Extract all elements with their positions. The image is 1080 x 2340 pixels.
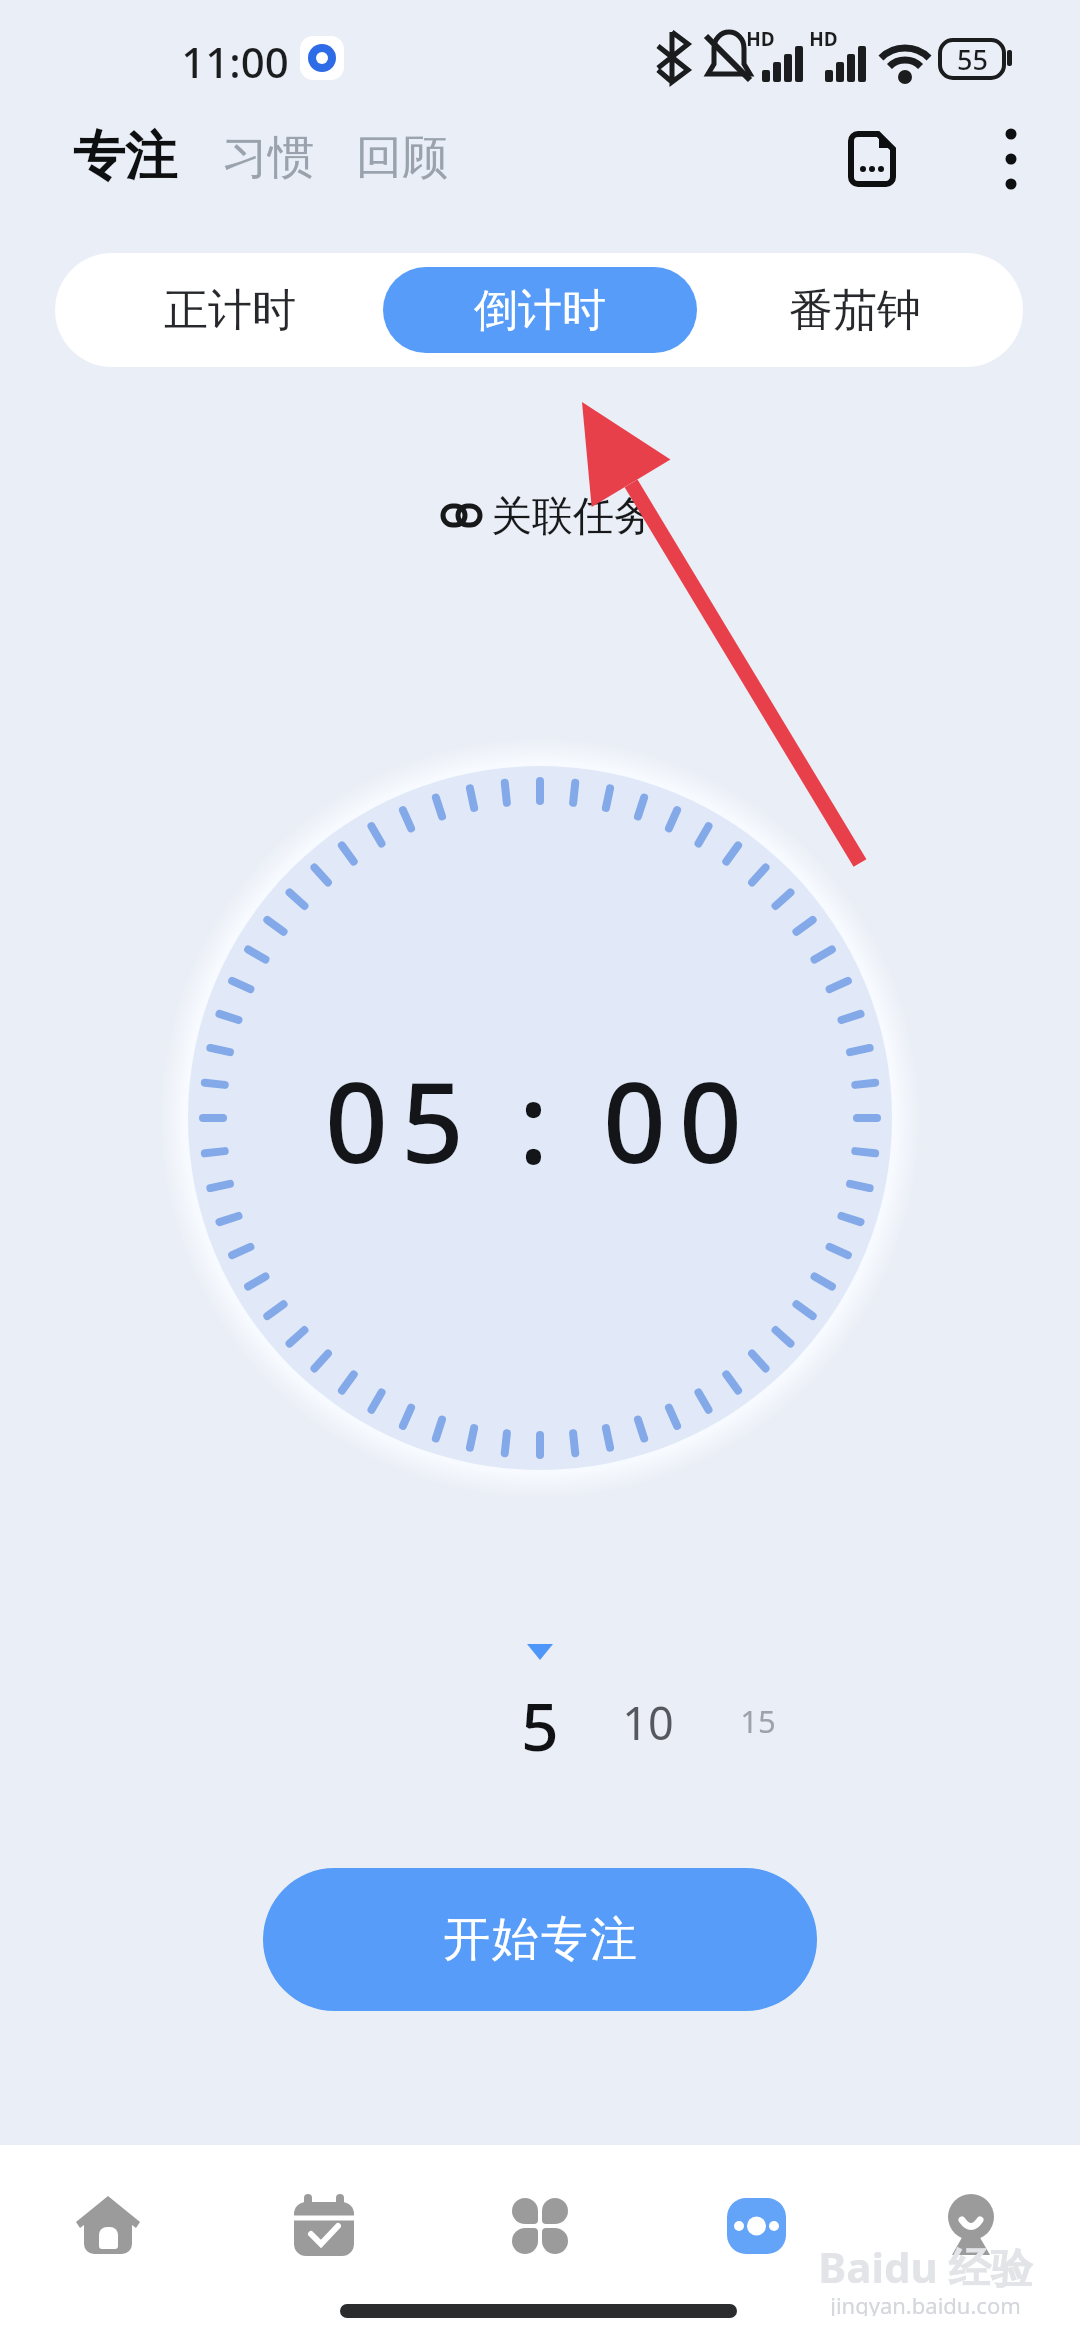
staticText: HD <box>809 26 838 50</box>
staticText: 5 <box>521 1680 559 1760</box>
staticText: 正计时 <box>164 283 296 338</box>
button[interactable]: 正计时 <box>110 278 350 342</box>
button[interactable]: 回顾 <box>352 128 452 188</box>
button[interactable] <box>727 2198 786 2254</box>
button[interactable] <box>848 131 896 187</box>
staticText: 05 : 00 <box>325 1045 755 1195</box>
staticText: 11:00 <box>181 33 289 85</box>
staticText: 习惯 <box>222 129 314 187</box>
staticText: 回顾 <box>356 129 448 187</box>
button[interactable]: 倒计时 <box>420 278 660 342</box>
button[interactable]: 习惯 <box>218 128 318 188</box>
button[interactable]: 关联任务 <box>435 486 645 548</box>
staticText: 10 <box>622 1692 674 1753</box>
staticText: 关联任务 <box>491 491 655 543</box>
staticText: 专注 <box>73 124 177 190</box>
staticText: 番茄钟 <box>789 283 921 338</box>
staticText: HD <box>746 26 775 50</box>
button[interactable] <box>945 2192 997 2256</box>
staticText: 开始专注 <box>442 1910 638 1969</box>
button[interactable] <box>76 2196 140 2258</box>
button[interactable]: 专注 <box>70 122 180 192</box>
staticText: 15 <box>740 1700 776 1742</box>
staticText: jingyan.baidu.com <box>830 2290 1021 2316</box>
button[interactable]: 5 <box>500 1680 580 1760</box>
button[interactable]: 10 <box>608 1690 688 1754</box>
button[interactable] <box>512 2198 568 2254</box>
staticText: 倒计时 <box>474 283 606 338</box>
button[interactable] <box>294 2194 354 2256</box>
staticText: 55 <box>957 41 988 78</box>
button[interactable]: 15 <box>722 1695 794 1747</box>
button[interactable]: 开始专注 <box>263 1868 817 2011</box>
staticText: Baidu 经验 <box>818 2238 1033 2294</box>
button[interactable] <box>996 126 1026 192</box>
button[interactable]: 番茄钟 <box>735 278 975 342</box>
button[interactable] <box>383 267 697 353</box>
